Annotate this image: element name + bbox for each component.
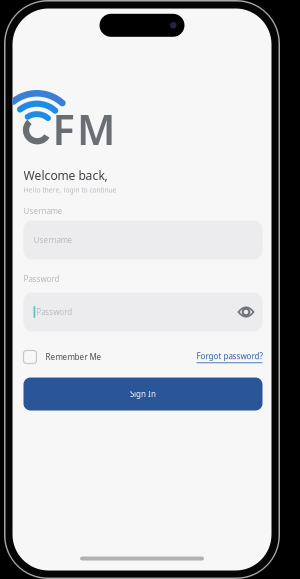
staticText: Username (33, 235, 72, 245)
staticText: Hello there, login to continue (23, 185, 116, 194)
staticText: M (77, 101, 115, 156)
button[interactable]: Sign In (23, 377, 262, 410)
staticText: Password (36, 307, 72, 317)
staticText: Welcome back, (23, 167, 107, 183)
button[interactable]: Show password (237, 306, 262, 317)
staticText: Password (23, 273, 59, 284)
staticText: F (52, 101, 74, 156)
staticText: Remember Me (45, 352, 101, 362)
staticText: Forgot password? (196, 351, 262, 361)
button[interactable]: Forgot password? (196, 351, 262, 363)
staticText: Username (23, 205, 62, 216)
button[interactable]: Remember Me (23, 350, 101, 363)
staticText: Sign In (130, 389, 156, 399)
